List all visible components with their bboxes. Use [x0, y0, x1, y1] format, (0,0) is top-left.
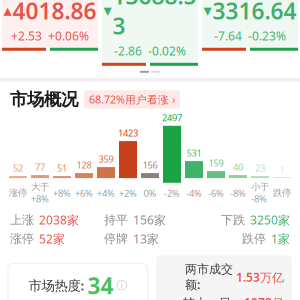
button[interactable]: 深证成指: [102, 0, 198, 66]
staticText: -4%: [186, 187, 202, 199]
staticText: 跌停: [273, 187, 291, 199]
staticText: 3250家: [250, 212, 290, 228]
staticText: 359: [98, 153, 113, 165]
staticText: 0%: [143, 187, 156, 199]
staticText: 大于 +8%: [31, 181, 49, 205]
staticText: 涨停: [10, 231, 34, 246]
staticText: +8%: [53, 187, 71, 199]
button[interactable]: 上证指数: [2, 0, 98, 51]
staticText: 52家: [39, 231, 65, 247]
staticText: -2.86: [114, 43, 142, 59]
staticText: 涨停: [9, 187, 27, 199]
staticText: 159: [208, 157, 223, 169]
staticText: 较上一日:: [183, 294, 234, 300]
staticText: 23: [255, 162, 265, 174]
staticText: 40: [233, 161, 243, 173]
staticText: 13688.53: [112, 0, 196, 41]
button[interactable]: 68.72%用户看涨 ›: [84, 90, 180, 109]
staticText: 4018.86: [12, 0, 96, 26]
staticText: 68.72%用户看涨 ›: [89, 92, 175, 107]
staticText: ▼: [203, 5, 211, 17]
staticText: 3316.64: [212, 0, 296, 26]
staticText: +6%: [75, 187, 93, 199]
staticText: 2038家: [39, 212, 79, 228]
staticText: 531: [186, 147, 201, 159]
staticText: 跌停: [242, 231, 266, 246]
staticText: 两市成交额:: [185, 262, 233, 292]
staticText: +0.06%: [48, 28, 89, 44]
staticText: ▼: [103, 5, 111, 17]
staticText: 34: [87, 270, 113, 300]
staticText: +4%: [97, 187, 115, 199]
staticText: 128: [76, 159, 91, 171]
staticText: 1: [279, 163, 284, 175]
staticText: -2%: [164, 187, 180, 199]
staticText: 52: [13, 162, 23, 174]
staticText: -8%: [230, 187, 246, 199]
staticText: 13家: [133, 231, 159, 247]
staticText: 小于 -8%: [251, 181, 269, 205]
staticText: -7.64: [214, 28, 242, 44]
staticText: +1078亿: [237, 294, 284, 300]
button[interactable]: 创业板指: [202, 0, 298, 51]
staticText: 上涨: [10, 212, 34, 227]
staticText: 持平: [104, 212, 128, 227]
staticText: 2497: [162, 111, 182, 124]
staticText: 市场热度:: [28, 276, 84, 294]
staticText: 1423: [118, 127, 138, 139]
staticText: 156家: [133, 212, 166, 228]
staticText: 77: [35, 161, 45, 173]
staticText: 1.53万亿: [236, 269, 284, 285]
staticText: 51: [57, 162, 67, 174]
staticText: 156: [142, 159, 157, 171]
staticText: 1家: [271, 231, 290, 247]
staticText: ⓘ: [116, 279, 127, 292]
staticText: +2%: [119, 187, 137, 199]
staticText: -0.02%: [148, 43, 186, 59]
staticText: +2.53: [11, 28, 42, 44]
staticText: 市场概况: [10, 89, 78, 110]
staticText: 停牌: [104, 231, 128, 246]
staticText: -6%: [208, 187, 224, 199]
staticText: ▲: [3, 5, 11, 17]
staticText: 下跌: [221, 212, 245, 227]
staticText: -0.23%: [248, 28, 286, 44]
